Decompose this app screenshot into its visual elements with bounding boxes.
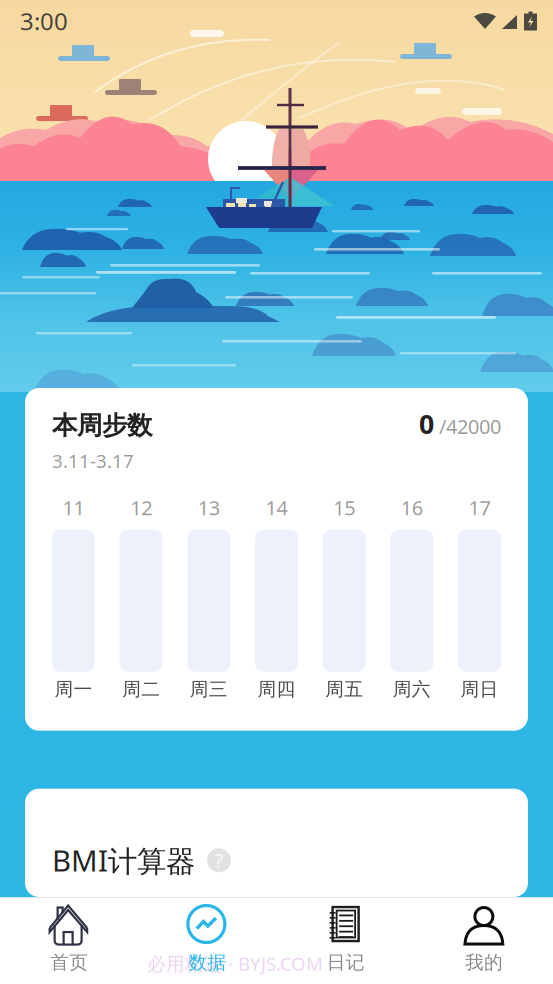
staticText: 周三 — [190, 678, 228, 701]
staticText: 数据 — [188, 951, 226, 974]
staticText: 16 — [401, 494, 423, 521]
staticText: 3.11-3.17 — [52, 448, 134, 473]
staticText: 0 — [419, 406, 434, 441]
staticText: 周六 — [393, 678, 431, 701]
button[interactable]: 首页 — [0, 897, 138, 984]
staticText: 首页 — [50, 951, 88, 974]
staticText: 周五 — [325, 678, 363, 701]
staticText: 周四 — [257, 678, 295, 701]
staticText: 必用精选 · BYJS.COM — [147, 951, 323, 976]
staticText: 17 — [468, 494, 490, 521]
staticText: 13 — [198, 494, 220, 521]
staticText: 14 — [265, 494, 287, 521]
staticText: ? — [214, 847, 223, 874]
staticText: 周日 — [460, 678, 498, 701]
staticText: 3:00 — [20, 5, 68, 37]
staticText: 日记 — [327, 951, 365, 974]
staticText: 周一 — [54, 678, 92, 701]
staticText: 我的 — [465, 951, 503, 974]
staticText: 15 — [333, 494, 355, 521]
button[interactable]: 数据 — [138, 897, 276, 984]
button[interactable]: 我的 — [415, 897, 553, 984]
staticText: /42000 — [434, 413, 501, 440]
staticText: BMI计算器 — [52, 841, 195, 880]
staticText: 12 — [130, 494, 152, 521]
staticText: 周二 — [122, 678, 160, 701]
button[interactable]: 日记 — [276, 897, 415, 984]
staticText: 本周步数 — [52, 410, 152, 441]
staticText: 11 — [62, 494, 84, 521]
